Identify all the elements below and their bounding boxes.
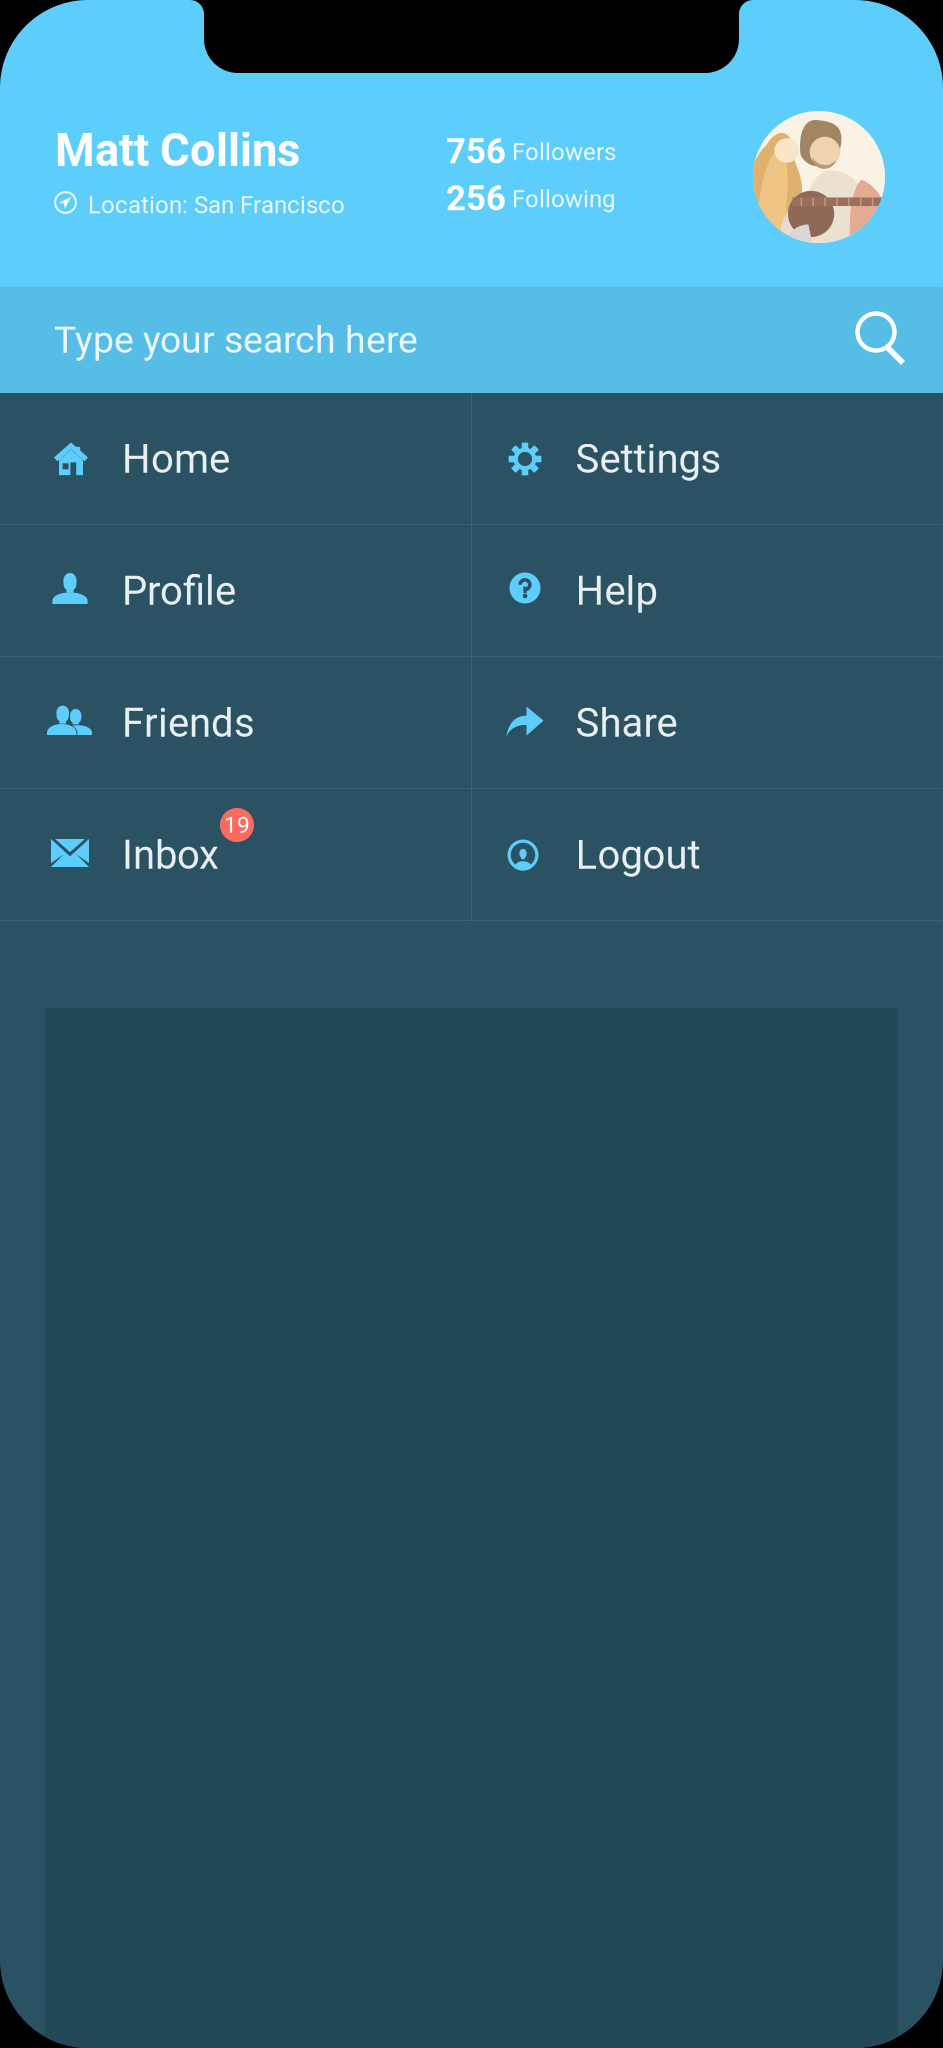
button[interactable]: Logout	[471, 789, 943, 921]
staticText: Inbox	[122, 832, 219, 878]
staticText: Friends	[122, 700, 255, 746]
staticText: 756	[446, 131, 506, 172]
button[interactable]: Profile	[0, 525, 471, 657]
staticText: Matt Collins	[55, 124, 300, 177]
staticText: Share	[575, 700, 677, 746]
staticText: 256	[446, 178, 506, 219]
button[interactable]: Friends	[0, 657, 471, 789]
button[interactable]: Home	[0, 393, 471, 525]
staticText: Settings	[575, 436, 721, 482]
staticText: Following	[512, 185, 615, 213]
staticText: Type your search here	[54, 318, 418, 362]
staticText: Profile	[122, 568, 236, 614]
button[interactable]: Inbox	[0, 789, 471, 921]
button[interactable]: Settings	[471, 393, 943, 525]
staticText: Home	[122, 436, 230, 482]
staticText: Followers	[512, 138, 616, 166]
button[interactable]: Type your search here	[0, 287, 943, 393]
button[interactable]: Share	[471, 657, 943, 789]
staticText: Location: San Francisco	[88, 191, 345, 219]
button[interactable]: Help	[471, 525, 943, 657]
staticText: 19	[224, 812, 250, 838]
staticText: Logout	[575, 832, 700, 878]
staticText: Help	[575, 568, 657, 614]
